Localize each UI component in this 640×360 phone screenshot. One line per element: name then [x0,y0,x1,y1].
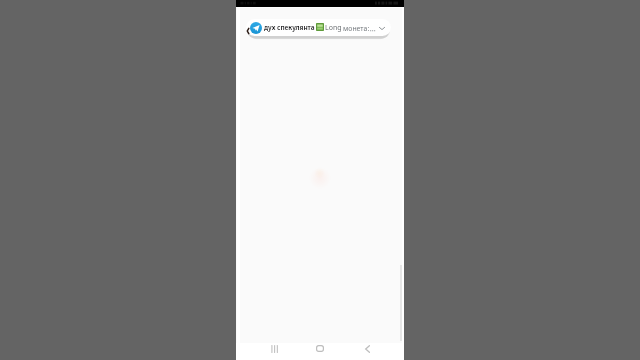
button[interactable]: Back [352,340,382,357]
button[interactable]: Home [305,340,335,357]
button[interactable]: Back [243,25,251,37]
button[interactable]: Recent apps [259,340,289,357]
other: Expand [377,23,387,33]
staticText: Long [325,23,342,33]
staticText: дух спекулянта [264,23,315,32]
staticText: монета: [343,24,370,33]
button[interactable]: дух спекулянта [246,19,391,36]
